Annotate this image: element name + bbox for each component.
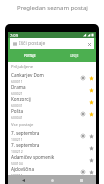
button[interactable]: Home [38,175,67,184]
other: Favorite [89,134,94,139]
button[interactable]: Favorite [88,157,95,164]
staticText: Adamičev spomenik [11,154,55,160]
button[interactable]: Favorite [88,75,95,82]
staticText: 600041 [11,115,23,120]
button[interactable]: Konzorcij [8,96,96,108]
staticText: Ajdovščina [11,166,34,172]
button[interactable]: Cankarjev Dom [8,72,96,84]
button[interactable]: Ajdovščina [8,166,96,178]
button[interactable]: Pošta [8,108,96,120]
staticText: Cankarjev Dom [11,72,44,78]
staticText: 7. septembra [11,130,40,136]
button[interactable]: Clear [86,41,92,47]
button[interactable]: Ajdovščina [8,178,96,184]
staticText: Pošta [11,108,23,114]
staticText: 600031 [11,103,23,108]
other: Nearby [81,112,85,116]
staticText: Konzorcij [11,96,31,102]
button[interactable]: Recents [67,175,96,184]
button[interactable]: Menu [10,38,94,49]
staticText: 7. septembra [11,142,40,148]
staticText: Priljubljene [11,64,34,70]
staticText: LINIJE [70,54,79,58]
other: Favorite [89,88,94,93]
button[interactable]: Favorite [88,111,95,118]
staticText: Ajdovščina [11,178,34,184]
other: Nearby [81,134,85,138]
button[interactable]: Adamičev spomenik [8,154,96,166]
other: Favorite [89,158,94,163]
other: Nearby [81,76,85,80]
button[interactable]: 7. septembra [8,142,96,154]
other: Favorite [89,76,94,81]
staticText: 600021 [11,91,23,96]
button[interactable]: Favorite [88,87,95,94]
staticText: 600011 [11,79,23,84]
staticText: POSTAJE [24,54,36,58]
other: Favorite [89,170,94,175]
other: Nearby [81,170,85,174]
button[interactable]: Favorite [88,145,95,152]
staticText: Pregledan seznam postaj [17,4,88,12]
button[interactable]: Favorite [88,169,95,176]
other: Favorite [89,112,94,117]
staticText: Drama [11,84,26,90]
button[interactable]: Back [8,175,38,184]
button[interactable]: POSTAJE [8,49,52,62]
staticText: Išči postaje [19,40,46,47]
button[interactable]: LINIJE [52,49,96,62]
staticText: 100211 [11,137,23,142]
button[interactable]: Favorite [88,99,95,106]
staticText: 500104 [11,161,23,166]
button[interactable]: Drama [8,84,96,96]
other: Favorite [89,100,94,105]
other: Favorite [89,146,94,151]
button[interactable]: Favorite [88,133,95,140]
button[interactable]: 7. septembra [8,130,96,142]
staticText: 100212 [11,149,23,154]
staticText: 600011 [11,173,23,178]
other: Menu [13,42,17,46]
staticText: Vse postaje [11,122,34,128]
staticText: 7:09 [10,33,18,38]
